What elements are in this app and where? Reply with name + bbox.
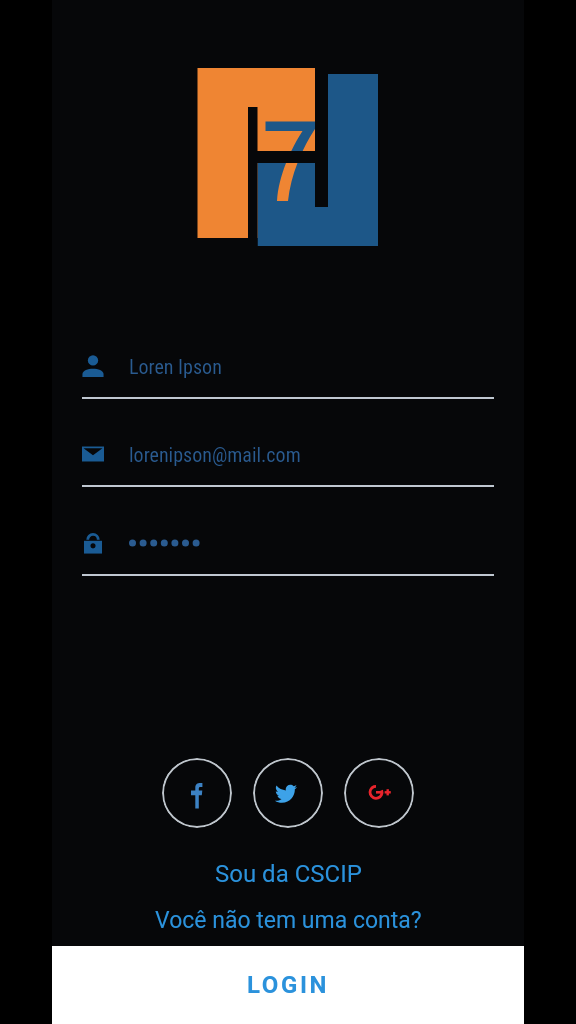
- button[interactable]: LOGIN: [52, 946, 524, 1024]
- button[interactable]: Facebook: [162, 758, 232, 828]
- button[interactable]: Twitter: [253, 758, 323, 828]
- staticText: Loren Ipson: [129, 355, 222, 378]
- button[interactable]: Sou da CSCIP: [52, 855, 524, 893]
- button[interactable]: Loren Ipson: [82, 345, 494, 399]
- staticText: LOGIN: [247, 971, 330, 999]
- staticText: lorenipson@mail.com: [129, 443, 301, 466]
- staticText: Sou da CSCIP: [215, 860, 362, 888]
- button[interactable]: lorenipson@mail.com: [82, 433, 494, 487]
- button[interactable]: Você não tem uma conta?: [52, 901, 524, 939]
- button[interactable]: Google Plus: [344, 758, 414, 828]
- staticText: Você não tem uma conta?: [155, 907, 422, 934]
- button[interactable]: [82, 522, 494, 576]
